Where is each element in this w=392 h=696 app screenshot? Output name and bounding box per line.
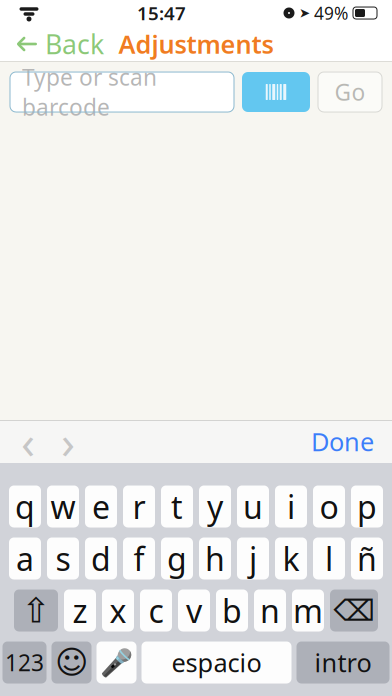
button[interactable]: r [123, 485, 155, 527]
staticText: 🎤 [100, 647, 133, 678]
staticText: o [319, 485, 338, 528]
staticText: n [260, 589, 280, 632]
staticText: d [91, 537, 111, 580]
button[interactable]: m [292, 589, 324, 631]
button[interactable]: g [161, 537, 193, 579]
staticText: r [132, 485, 145, 528]
button[interactable]: Back [0, 20, 104, 68]
button[interactable]: s [47, 537, 79, 579]
staticText: w [50, 485, 75, 528]
button[interactable]: k [275, 537, 307, 579]
button[interactable]: intro [296, 641, 389, 683]
button[interactable]: t [161, 485, 193, 527]
button[interactable]: i [275, 485, 307, 527]
staticText: b [222, 589, 242, 632]
button[interactable]: ñ [351, 537, 383, 579]
button[interactable]: Dictate [96, 641, 136, 683]
button[interactable]: Previous field [8, 420, 48, 462]
staticText: h [205, 537, 225, 580]
button[interactable]: Next field [48, 420, 88, 462]
staticText: ➤ [299, 5, 310, 20]
staticText: u [243, 485, 263, 528]
staticText: g [167, 537, 187, 580]
button[interactable]: a [9, 537, 41, 579]
staticText: 123 [5, 647, 44, 677]
button[interactable]: e [85, 485, 117, 527]
staticText: ☺ [55, 644, 88, 681]
button[interactable]: b [216, 589, 248, 631]
button[interactable]: q [9, 485, 41, 527]
staticText: intro [314, 646, 371, 679]
button[interactable]: 123 [2, 641, 46, 683]
staticText: › [61, 411, 75, 472]
staticText: v [186, 589, 202, 632]
staticText: ‹ [21, 411, 35, 472]
staticText: m [293, 589, 323, 632]
button[interactable]: l [313, 537, 345, 579]
button[interactable]: Go [318, 72, 382, 112]
staticText: x [109, 589, 126, 632]
button[interactable]: Shift [14, 589, 58, 631]
staticText: l [325, 537, 333, 580]
staticText: j [249, 537, 257, 580]
button[interactable]: Emoji [51, 641, 91, 683]
button[interactable]: u [237, 485, 269, 527]
staticText: k [282, 537, 299, 580]
button[interactable]: y [199, 485, 231, 527]
staticText: Adjustments [118, 27, 273, 61]
staticText: i [287, 485, 295, 528]
staticText: espacio [171, 646, 261, 679]
staticText: ñ [357, 537, 377, 580]
staticText: t [171, 485, 183, 528]
staticText: e [92, 485, 110, 528]
button[interactable]: Scan barcode [242, 72, 310, 112]
staticText: a [16, 537, 34, 580]
button[interactable]: x [102, 589, 134, 631]
staticText: 15:47 [137, 1, 186, 25]
staticText: Type or scan barcode [22, 62, 157, 122]
staticText: s [55, 537, 70, 580]
staticText: Done [311, 425, 374, 458]
staticText: z [72, 589, 87, 632]
button[interactable]: h [199, 537, 231, 579]
staticText: q [15, 485, 35, 528]
button[interactable]: c [140, 589, 172, 631]
button[interactable]: j [237, 537, 269, 579]
button[interactable]: Delete [330, 589, 378, 631]
staticText: p [357, 485, 377, 528]
button[interactable]: o [313, 485, 345, 527]
staticText: c [148, 589, 163, 632]
button[interactable]: d [85, 537, 117, 579]
staticText: 49% [314, 1, 348, 24]
button[interactable]: espacio [141, 641, 291, 683]
staticText: ⇧ [21, 591, 50, 630]
staticText: Back [45, 26, 104, 62]
staticText: Go [334, 77, 365, 107]
staticText: f [133, 537, 144, 580]
button[interactable]: v [178, 589, 210, 631]
button[interactable]: p [351, 485, 383, 527]
staticText: ⌫ [333, 594, 374, 627]
button[interactable]: n [254, 589, 286, 631]
button[interactable]: Done [297, 420, 388, 462]
button[interactable]: Type or scan barcode [10, 72, 234, 112]
button[interactable]: z [64, 589, 96, 631]
button[interactable]: w [47, 485, 79, 527]
button[interactable]: f [123, 537, 155, 579]
staticText: y [207, 485, 223, 528]
